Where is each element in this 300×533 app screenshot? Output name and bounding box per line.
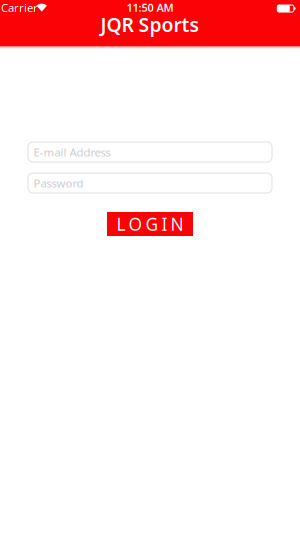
button[interactable]: E-mail Address — [0, 142, 300, 162]
button[interactable]: Password — [0, 173, 300, 193]
staticText: E-mail Address — [33, 144, 110, 160]
staticText: 11:50 AM — [126, 0, 173, 15]
staticText: Carrier — [1, 0, 38, 15]
staticText: JQR Sports — [100, 11, 199, 38]
button[interactable]: LOGIN — [107, 212, 193, 236]
staticText: Password — [33, 175, 83, 191]
staticText: LOGIN — [116, 212, 183, 236]
